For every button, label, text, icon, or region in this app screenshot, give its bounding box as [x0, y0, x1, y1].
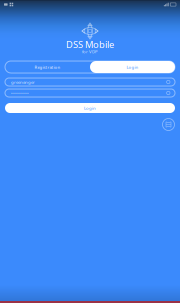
staticText: greenanger [11, 79, 35, 85]
staticText: Registration [34, 64, 60, 70]
staticText: for VDP [82, 49, 98, 54]
staticText: Login [84, 105, 96, 111]
button[interactable]: Login [5, 103, 175, 113]
button[interactable]: Server settings [162, 118, 175, 131]
button[interactable]: Registration [5, 61, 90, 73]
button[interactable]: Login [90, 61, 175, 73]
staticText: DSS Mobile [66, 38, 114, 51]
staticText: Login [126, 64, 138, 70]
staticText: ••••••••• [11, 90, 29, 96]
